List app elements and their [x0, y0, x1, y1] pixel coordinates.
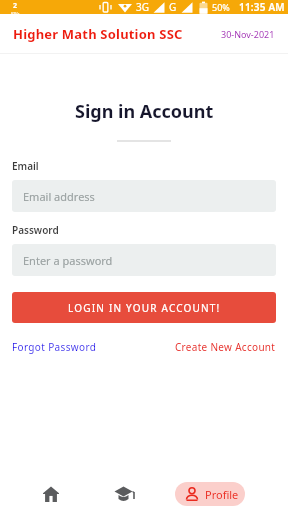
button[interactable]: Enter a password — [12, 244, 276, 276]
staticText: 2 — [13, 1, 18, 11]
button[interactable]: Forgot Password — [12, 340, 97, 354]
staticText: G — [169, 0, 177, 14]
button[interactable]: Profile — [175, 482, 245, 506]
button[interactable]: Email address — [12, 180, 276, 212]
staticText: Email address — [23, 189, 95, 204]
staticText: Password — [12, 223, 59, 237]
button[interactable]: LOGIN IN YOUR ACCOUNT! — [12, 292, 276, 323]
staticText: Higher Math Solution SSC — [13, 25, 183, 43]
staticText: 11:35 AM — [239, 0, 285, 14]
button[interactable]: Create New Account — [175, 340, 276, 354]
staticText: KB/s — [11, 11, 20, 14]
staticText: Enter a password — [23, 253, 113, 268]
staticText: LOGIN IN YOUR ACCOUNT! — [68, 301, 221, 315]
button[interactable] — [36, 479, 66, 509]
staticText: 30-Nov-2021 — [221, 28, 275, 40]
staticText: 50% — [212, 1, 230, 13]
staticText: Sign in Account — [75, 99, 214, 124]
staticText: Profile — [205, 487, 239, 502]
staticText: Email — [12, 159, 39, 173]
staticText: 3G — [136, 0, 149, 14]
button[interactable] — [109, 479, 139, 509]
